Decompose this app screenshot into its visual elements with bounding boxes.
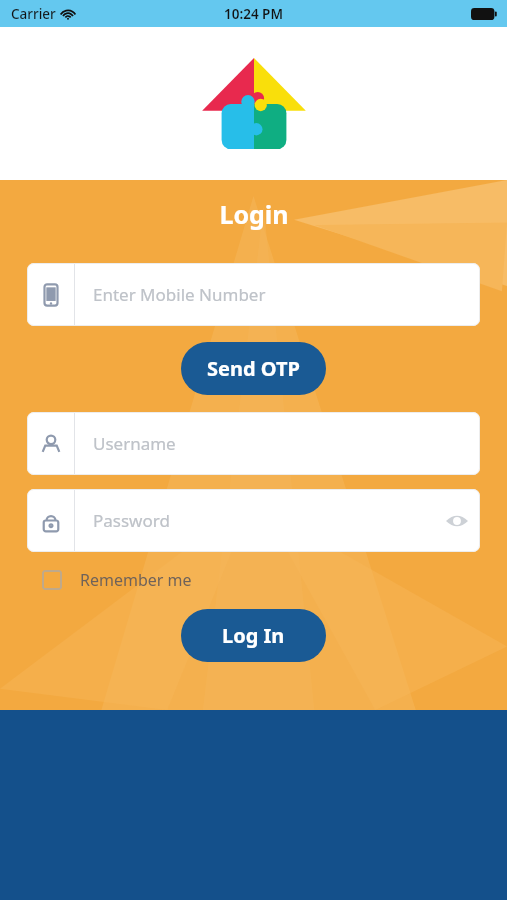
- staticText: Remember me: [80, 569, 192, 591]
- staticText: Username: [93, 432, 176, 455]
- staticText: Password: [93, 509, 170, 532]
- staticText: 10:24 PM: [224, 5, 283, 23]
- button[interactable]: Send OTP: [181, 342, 326, 395]
- staticText: Carrier: [11, 5, 56, 23]
- button[interactable]: Log In: [181, 609, 326, 662]
- staticText: Send OTP: [207, 355, 300, 382]
- staticText: Log In: [222, 622, 285, 649]
- staticText: Login: [219, 197, 289, 231]
- button[interactable]: Show password: [434, 489, 480, 552]
- button[interactable]: Enter Mobile Number: [27, 263, 480, 326]
- button[interactable]: Username: [27, 412, 480, 475]
- button[interactable]: Remember me: [42, 569, 192, 591]
- staticText: Enter Mobile Number: [93, 283, 266, 306]
- button[interactable]: Password: [27, 489, 480, 552]
